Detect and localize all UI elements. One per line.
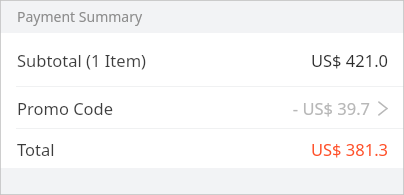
staticText: US$ 381.3	[310, 138, 388, 160]
button[interactable]: Subtotal (1 Item)	[0, 33, 404, 86]
staticText: US$ 421.0	[310, 49, 388, 71]
staticText: Promo Code	[17, 97, 114, 119]
staticText: Payment Summary	[17, 7, 143, 26]
button[interactable]: Total	[0, 129, 404, 168]
staticText: Subtotal (1 Item)	[17, 49, 147, 71]
staticText: Total	[17, 138, 55, 160]
staticText: - US$ 39.7	[292, 97, 370, 119]
button[interactable]: Promo Code	[0, 87, 404, 128]
